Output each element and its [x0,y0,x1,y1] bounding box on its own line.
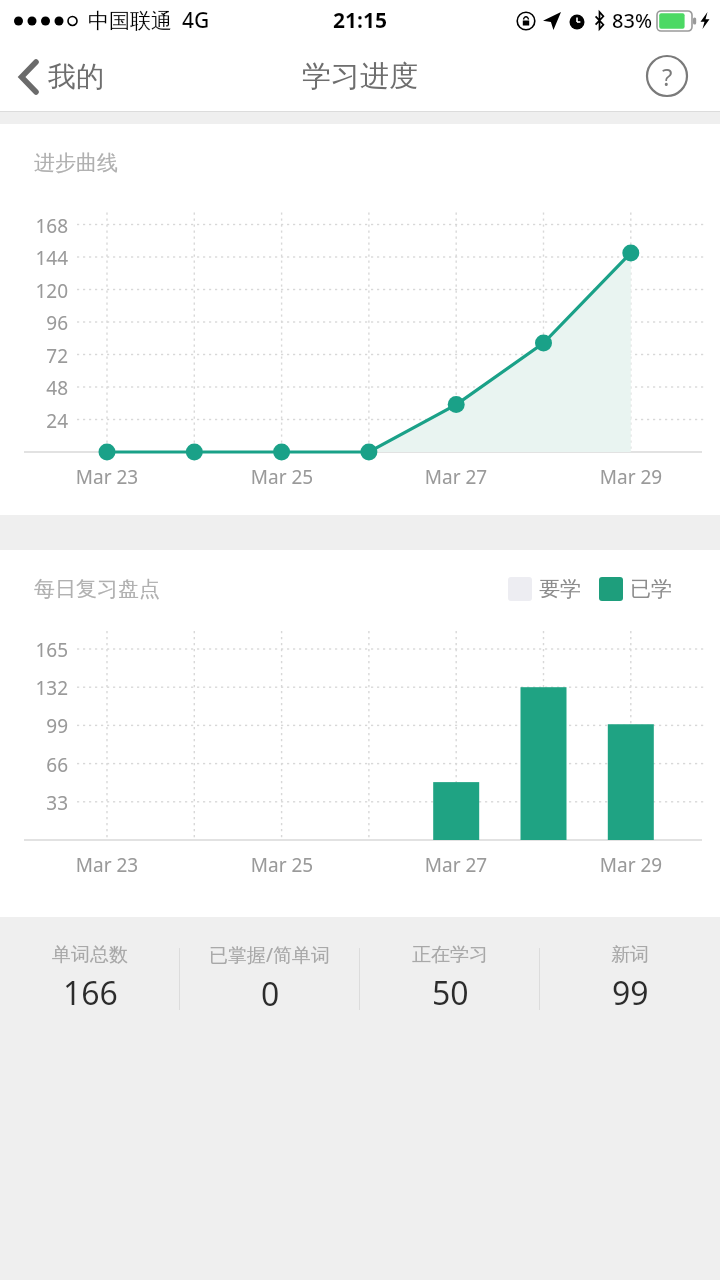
staticText: Mar 27 [396,852,516,878]
staticText: 99 [16,713,68,739]
button[interactable]: 我的 [0,51,116,102]
staticText: 中国联通 [88,8,172,34]
staticText: 已学 [630,576,672,602]
staticText: 48 [16,375,68,401]
staticText: Mar 29 [571,852,691,878]
staticText: Mar 25 [222,852,342,878]
staticText: 120 [16,278,68,304]
staticText: 每日复习盘点 [34,576,160,602]
staticText: 我的 [48,59,104,94]
staticText: 83% [612,7,652,34]
staticText: 99 [612,971,649,1015]
button[interactable]: 新词 [540,917,720,1057]
staticText: 0 [261,972,280,1016]
staticText: 已掌握/简单词 [209,942,331,968]
staticText: Mar 23 [47,464,167,490]
staticText: 24 [16,408,68,434]
button[interactable]: Help [645,54,689,98]
staticText: Mar 23 [47,852,167,878]
staticText: 132 [16,675,68,701]
staticText: 165 [16,637,68,663]
button[interactable]: 已掌握/简单词 [180,917,360,1057]
staticText: 单词总数 [52,943,128,967]
button[interactable]: 单词总数 [0,917,180,1057]
staticText: 4G [182,6,210,35]
staticText: 要学 [539,576,581,602]
staticText: 72 [16,343,68,369]
staticText: 66 [16,752,68,778]
staticText: 进步曲线 [34,150,118,176]
staticText: 168 [16,213,68,239]
staticText: 新词 [611,943,649,967]
staticText: 166 [63,971,118,1015]
staticText: 50 [432,971,469,1015]
staticText: Mar 25 [222,464,342,490]
staticText: 144 [16,245,68,271]
button[interactable]: 正在学习 [360,917,540,1057]
staticText: 学习进度 [302,58,418,95]
staticText: 33 [16,790,68,816]
staticText: 21:15 [333,6,387,35]
staticText: 96 [16,310,68,336]
staticText: Mar 29 [571,464,691,490]
staticText: Mar 27 [396,464,516,490]
staticText: 正在学习 [412,943,488,967]
staticText: ? [662,60,673,93]
